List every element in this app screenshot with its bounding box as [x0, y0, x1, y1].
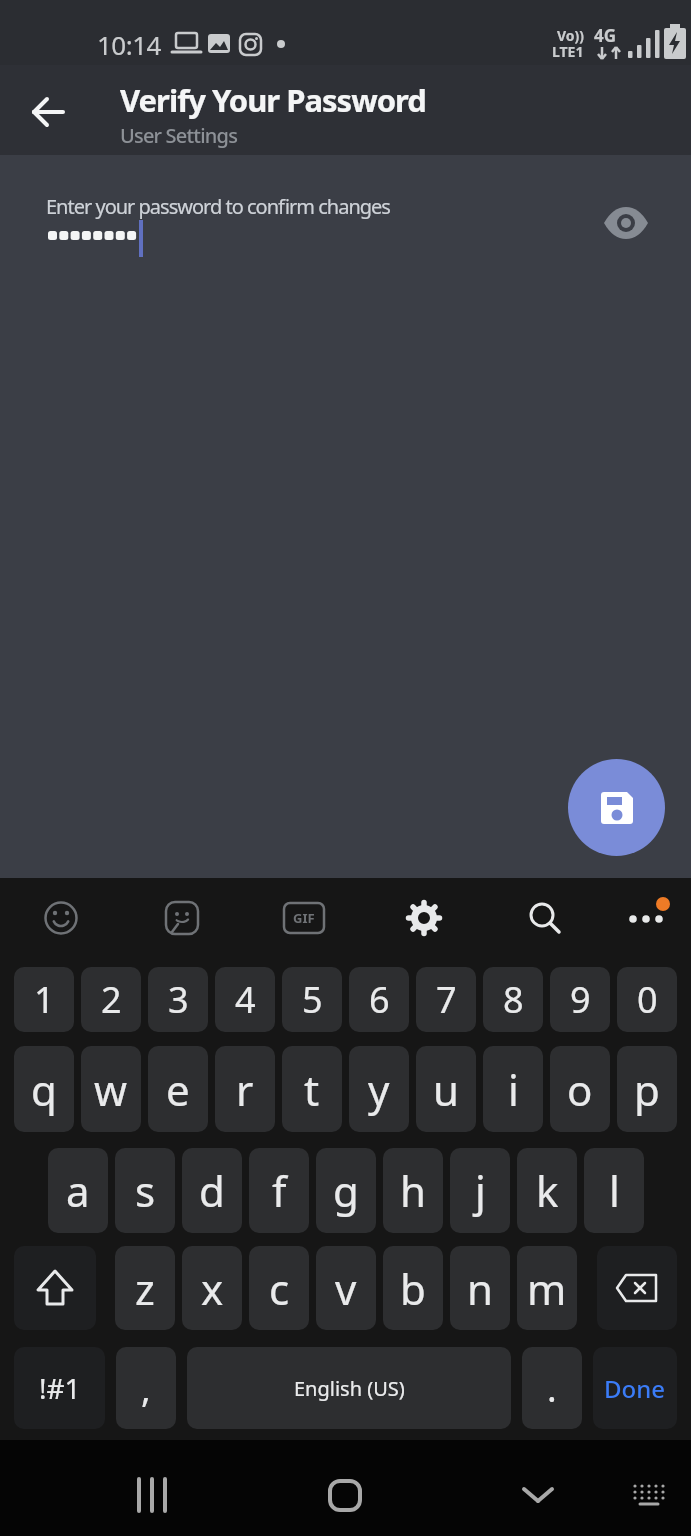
staticText: d	[199, 1162, 225, 1219]
staticText: 4	[235, 975, 256, 1024]
staticText: i	[508, 1061, 519, 1118]
button[interactable]	[525, 898, 565, 938]
staticText: 7	[436, 975, 457, 1024]
staticText: m	[527, 1260, 567, 1317]
button[interactable]: 1	[14, 967, 74, 1032]
staticText: w	[94, 1061, 128, 1118]
button[interactable]: a	[48, 1148, 108, 1233]
button[interactable]: n	[450, 1246, 510, 1330]
button[interactable]: GIF	[282, 901, 326, 935]
button[interactable]: k	[517, 1148, 577, 1233]
button[interactable]: b	[383, 1246, 443, 1330]
button[interactable]: f	[249, 1148, 309, 1233]
button[interactable]: 8	[483, 967, 543, 1032]
staticText: s	[135, 1162, 156, 1219]
staticText: Vo))	[557, 26, 585, 45]
staticText: User Settings	[120, 122, 238, 149]
staticText: z	[135, 1260, 155, 1317]
staticText: k	[536, 1162, 559, 1219]
button[interactable]	[30, 180, 660, 270]
button[interactable]: Done	[593, 1347, 677, 1429]
staticText: g	[333, 1162, 359, 1219]
button[interactable]: e	[148, 1046, 208, 1132]
button[interactable]: 4	[215, 967, 275, 1032]
button[interactable]: g	[316, 1148, 376, 1233]
button[interactable]: t	[282, 1046, 342, 1132]
button[interactable]: y	[349, 1046, 409, 1132]
button[interactable]: 7	[416, 967, 476, 1032]
staticText: o	[567, 1061, 593, 1118]
staticText: 0	[637, 975, 658, 1024]
button[interactable]	[162, 898, 202, 938]
button[interactable]: i	[483, 1046, 543, 1132]
button[interactable]	[620, 890, 680, 940]
button[interactable]: s	[115, 1148, 175, 1233]
staticText: .	[547, 1364, 557, 1413]
button[interactable]: z	[115, 1246, 175, 1330]
button[interactable]	[568, 759, 665, 856]
button[interactable]: x	[182, 1246, 242, 1330]
staticText: GIF	[293, 909, 315, 927]
staticText: LTE1	[552, 42, 584, 61]
button[interactable]: r	[215, 1046, 275, 1132]
button[interactable]	[630, 1478, 668, 1514]
staticText: Enter your password to confirm changes	[46, 193, 390, 220]
staticText: 3	[168, 975, 189, 1024]
staticText: u	[433, 1061, 459, 1118]
staticText: Verify Your Password	[120, 79, 426, 121]
button[interactable]	[598, 196, 654, 252]
button[interactable]: j	[450, 1148, 510, 1233]
button[interactable]: 2	[81, 967, 141, 1032]
staticText: 8	[503, 975, 524, 1024]
button[interactable]: d	[182, 1148, 242, 1233]
staticText: !#1	[39, 1369, 81, 1407]
staticText: l	[609, 1162, 620, 1219]
staticText: a	[66, 1162, 90, 1219]
button[interactable]: c	[249, 1246, 309, 1330]
button[interactable]	[41, 898, 81, 938]
button[interactable]: w	[81, 1046, 141, 1132]
staticText: 6	[369, 975, 390, 1024]
button[interactable]: 5	[282, 967, 342, 1032]
staticText: c	[269, 1260, 290, 1317]
staticText: 4G	[594, 24, 617, 47]
staticText: b	[400, 1260, 426, 1317]
button[interactable]: 0	[617, 967, 677, 1032]
button[interactable]: English (US)	[187, 1347, 511, 1429]
staticText: 5	[302, 975, 323, 1024]
staticText: t	[304, 1061, 320, 1118]
staticText: 10:14	[97, 27, 161, 62]
button[interactable]	[327, 1478, 363, 1514]
button[interactable]	[30, 94, 66, 130]
staticText: ,	[141, 1364, 151, 1413]
staticText: j	[475, 1162, 486, 1219]
button[interactable]: .	[522, 1347, 582, 1429]
button[interactable]	[131, 1475, 173, 1517]
button[interactable]	[404, 898, 444, 938]
button[interactable]: 9	[550, 967, 610, 1032]
staticText: v	[335, 1260, 357, 1317]
staticText: 2	[101, 975, 122, 1024]
button[interactable]: v	[316, 1246, 376, 1330]
staticText: x	[201, 1260, 224, 1317]
staticText: y	[368, 1061, 390, 1118]
button[interactable]: q	[14, 1046, 74, 1132]
button[interactable]: 3	[148, 967, 208, 1032]
button[interactable]: m	[517, 1246, 577, 1330]
staticText: n	[467, 1260, 493, 1317]
button[interactable]	[14, 1246, 96, 1330]
staticText: Done	[604, 1372, 666, 1405]
button[interactable]: o	[550, 1046, 610, 1132]
button[interactable]	[518, 1478, 558, 1514]
staticText: 1	[34, 975, 55, 1024]
button[interactable]: 6	[349, 967, 409, 1032]
button[interactable]: p	[617, 1046, 677, 1132]
staticText: q	[31, 1061, 57, 1118]
staticText: h	[400, 1162, 426, 1219]
button[interactable]: ,	[116, 1347, 176, 1429]
button[interactable]: l	[584, 1148, 644, 1233]
button[interactable]	[597, 1246, 677, 1330]
button[interactable]: h	[383, 1148, 443, 1233]
button[interactable]: !#1	[14, 1347, 105, 1429]
button[interactable]: u	[416, 1046, 476, 1132]
